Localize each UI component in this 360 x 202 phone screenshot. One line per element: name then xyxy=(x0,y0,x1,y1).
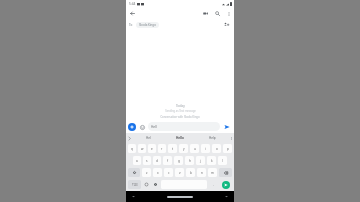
staticText: l xyxy=(222,159,223,163)
staticText: h xyxy=(189,159,191,163)
button[interactable]: Home xyxy=(167,196,193,198)
button[interactable]: Add attachment xyxy=(128,123,136,131)
button[interactable]: Send xyxy=(222,181,230,189)
button[interactable]: n xyxy=(197,168,206,177)
staticText: e xyxy=(151,147,153,151)
button[interactable]: Stickers xyxy=(138,123,146,131)
button[interactable]: o xyxy=(212,144,221,153)
button[interactable]: ?123 xyxy=(128,180,141,189)
staticText: Conversation with Skoda Kingo xyxy=(160,115,200,119)
button[interactable]: d xyxy=(153,156,161,165)
button[interactable]: Hell xyxy=(148,122,220,131)
staticText: Hello xyxy=(176,136,184,140)
staticText: c xyxy=(168,171,170,175)
staticText: d xyxy=(156,159,158,163)
button[interactable]: a xyxy=(133,156,141,165)
button[interactable]: r xyxy=(158,144,166,153)
button[interactable]: Send xyxy=(222,122,232,132)
staticText: Hell xyxy=(151,125,157,129)
button[interactable]: Video call xyxy=(199,7,211,19)
staticText: p xyxy=(227,147,229,151)
button[interactable]: j xyxy=(196,156,205,165)
button[interactable]: Shift xyxy=(128,168,140,177)
staticText: Hel xyxy=(146,136,151,140)
button[interactable]: Add contact xyxy=(222,20,231,29)
button[interactable]: f xyxy=(163,156,172,165)
button[interactable]: v xyxy=(175,168,184,177)
staticText: v xyxy=(179,171,181,175)
staticText: Skoda Kingo xyxy=(139,23,156,27)
staticText: Help xyxy=(209,136,216,140)
staticText: f xyxy=(167,159,169,163)
button[interactable]: Backspace xyxy=(219,168,232,177)
button[interactable]: Keyboard options xyxy=(228,133,234,143)
button[interactable]: c xyxy=(164,168,173,177)
button[interactable]: y xyxy=(179,144,188,153)
staticText: y xyxy=(183,147,185,151)
staticText: q xyxy=(131,147,133,151)
button[interactable]: s xyxy=(143,156,151,165)
staticText: x xyxy=(157,171,159,175)
staticText: u xyxy=(194,147,196,151)
staticText: . xyxy=(213,183,214,187)
button[interactable]: z xyxy=(142,168,151,177)
button[interactable]: b xyxy=(186,168,195,177)
staticText: n xyxy=(201,171,203,175)
staticText: Today xyxy=(176,104,185,108)
button[interactable]: m xyxy=(208,168,217,177)
staticText: Sending as Text message xyxy=(165,109,196,113)
staticText: i xyxy=(205,147,206,151)
button[interactable]: x xyxy=(153,168,162,177)
staticText: k xyxy=(211,159,213,163)
button[interactable]: h xyxy=(185,156,194,165)
staticText: s xyxy=(146,159,148,163)
button[interactable]: Skoda Kingo xyxy=(136,22,159,28)
staticText: g xyxy=(178,159,180,163)
staticText: a xyxy=(136,159,138,163)
staticText: z xyxy=(146,171,148,175)
button[interactable]: t xyxy=(168,144,177,153)
button[interactable]: e xyxy=(148,144,156,153)
staticText: w xyxy=(141,147,144,151)
button[interactable]: Settings xyxy=(151,179,160,190)
button[interactable]: Search xyxy=(211,7,223,19)
button[interactable]: i xyxy=(201,144,210,153)
button[interactable]: Back xyxy=(130,193,137,200)
button[interactable]: Help xyxy=(196,133,228,143)
button[interactable]: Emoji xyxy=(142,179,151,190)
staticText: To xyxy=(129,23,133,27)
button[interactable]: More options xyxy=(223,8,234,19)
button[interactable]: Expand suggestions xyxy=(126,133,133,143)
staticText: o xyxy=(216,147,218,151)
button[interactable]: Hello xyxy=(164,133,196,143)
button[interactable]: p xyxy=(223,144,232,153)
button[interactable]: q xyxy=(128,144,136,153)
button[interactable]: w xyxy=(138,144,146,153)
staticText: j xyxy=(200,159,201,163)
staticText: b xyxy=(190,171,192,175)
button[interactable]: u xyxy=(190,144,199,153)
button[interactable]: k xyxy=(207,156,216,165)
button[interactable]: Hel xyxy=(133,133,164,143)
button[interactable]: Recents xyxy=(223,193,230,200)
staticText: m xyxy=(211,171,214,175)
staticText: r xyxy=(161,147,163,151)
button[interactable]: Back xyxy=(126,7,138,19)
staticText: 5:44 xyxy=(129,2,136,6)
staticText: ?123 xyxy=(132,183,138,187)
button[interactable]: g xyxy=(174,156,183,165)
button[interactable]: l xyxy=(218,156,227,165)
staticText: t xyxy=(172,147,174,151)
